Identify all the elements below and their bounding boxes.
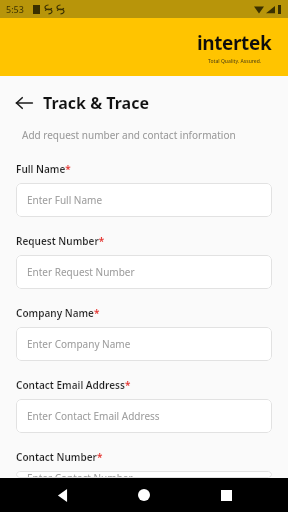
staticText: Enter Contact Number — [27, 471, 133, 478]
button[interactable]: Home — [124, 478, 164, 512]
staticText: Enter Company Name — [27, 337, 131, 351]
staticText: Enter Request Number — [27, 265, 135, 279]
staticText: Track & Trace — [43, 92, 150, 114]
button[interactable]: Enter Contact Email Address — [16, 399, 272, 433]
staticText: Enter Contact Email Address — [27, 409, 160, 423]
staticText: Full Name* — [16, 162, 71, 176]
button[interactable]: Back — [42, 478, 82, 512]
button[interactable]: Enter Contact Number — [16, 471, 272, 478]
button[interactable]: Enter Request Number — [16, 255, 272, 289]
staticText: 5:53 — [6, 3, 24, 15]
button[interactable]: Back — [13, 92, 35, 114]
staticText: Company Name* — [16, 306, 100, 320]
button[interactable]: Enter Full Name — [16, 183, 272, 217]
staticText: Total Quality. Assured. — [208, 58, 262, 65]
staticText: intertek — [197, 30, 272, 56]
staticText: Contact Email Address* — [16, 378, 131, 392]
staticText: Contact Number* — [16, 450, 103, 464]
button[interactable]: Recent apps — [206, 478, 246, 512]
staticText: Add request number and contact informati… — [22, 128, 236, 142]
staticText: Enter Full Name — [27, 193, 103, 207]
button[interactable]: Enter Company Name — [16, 327, 272, 361]
staticText: Request Number* — [16, 234, 105, 248]
